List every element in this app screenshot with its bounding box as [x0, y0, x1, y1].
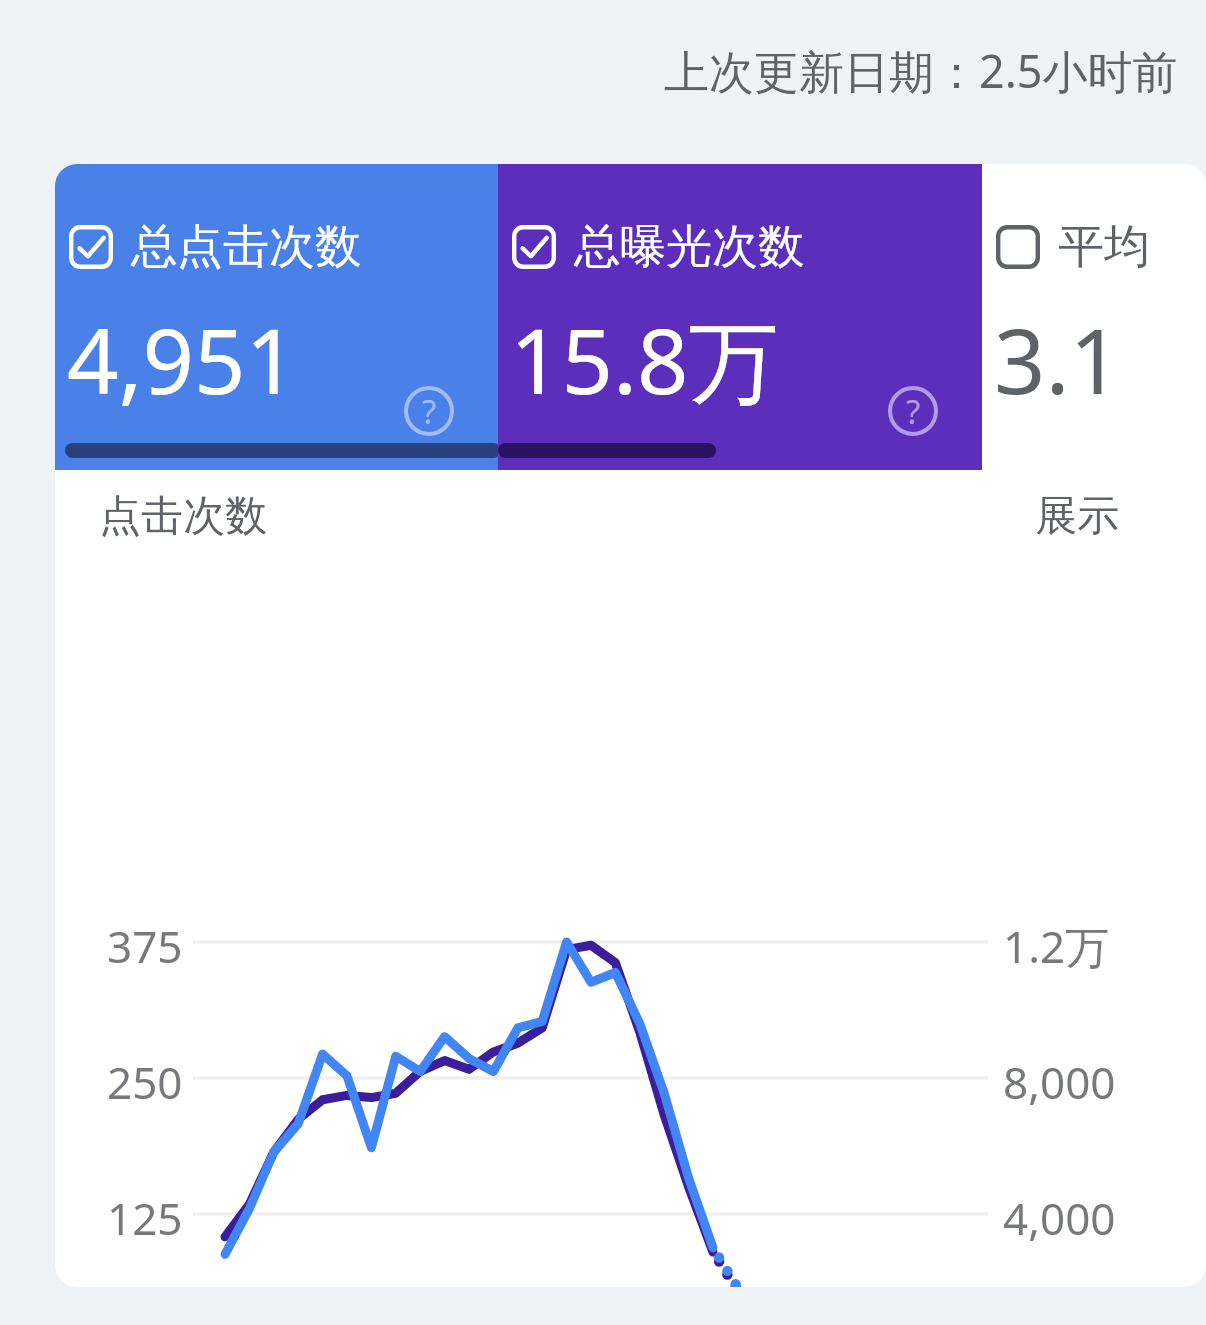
- staticText: 上次更新日期：2.5小时前: [664, 40, 1178, 101]
- staticText: 总点击次数: [131, 218, 361, 276]
- staticText: 4,000: [1003, 1188, 1116, 1248]
- staticText: 125: [107, 1188, 183, 1248]
- staticText: 250: [107, 1052, 183, 1112]
- staticText: ?: [422, 389, 437, 434]
- staticText: 3.1: [994, 298, 1122, 421]
- staticText: 4,951: [67, 298, 298, 421]
- staticText: 展示: [1035, 490, 1119, 543]
- staticText: 总曝光次数: [574, 218, 804, 276]
- button[interactable]: Help: [404, 386, 454, 436]
- staticText: 1.2万: [1003, 916, 1110, 976]
- staticText: ?: [906, 389, 921, 434]
- button[interactable]: 总曝光次数: [498, 164, 982, 470]
- button[interactable]: 平均: [982, 164, 1206, 470]
- staticText: 15.8万: [510, 298, 779, 421]
- button[interactable]: 总点击次数: [55, 164, 498, 470]
- staticText: 平均: [1058, 218, 1150, 276]
- staticText: 点击次数: [99, 490, 267, 543]
- staticText: 375: [107, 916, 183, 976]
- staticText: 8,000: [1003, 1052, 1116, 1112]
- button[interactable]: Help: [888, 386, 938, 436]
